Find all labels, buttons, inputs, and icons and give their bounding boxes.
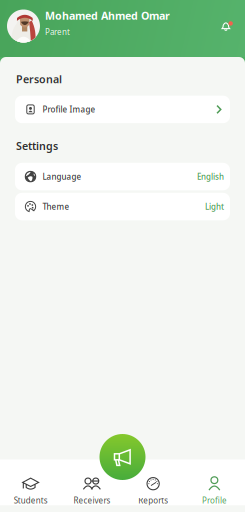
staticText: Light [205, 201, 224, 212]
staticText: Theme [42, 201, 69, 212]
staticText: Receivers [73, 495, 110, 506]
staticText: Profile Image [42, 104, 95, 115]
button[interactable]: Profile Image [15, 96, 230, 123]
button[interactable]: Profile [184, 459, 245, 505]
staticText: Parent [45, 27, 70, 37]
staticText: Settings [16, 139, 58, 153]
button[interactable]: Reports [122, 459, 184, 505]
staticText: Language [42, 171, 81, 182]
button[interactable]: Students [0, 459, 61, 505]
staticText: Personal [16, 72, 62, 86]
staticText: English [197, 171, 224, 182]
staticText: Students [14, 495, 48, 506]
staticText: Profile [202, 495, 227, 506]
button[interactable]: Send announcement [99, 434, 145, 480]
button[interactable]: Theme [15, 193, 230, 220]
button[interactable]: Language [15, 163, 230, 190]
staticText: Reports [138, 495, 168, 506]
staticText: Mohamed Ahmed Omar [45, 8, 170, 23]
button[interactable]: Receivers [61, 459, 122, 505]
button[interactable]: Notifications [221, 15, 232, 31]
